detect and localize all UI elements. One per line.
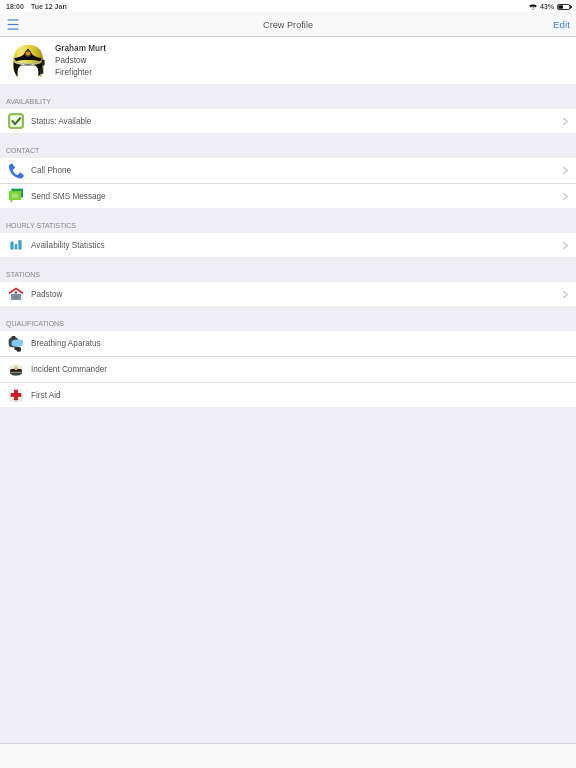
staticText: Status: Available (31, 117, 92, 126)
staticText: Send SMS Message (31, 192, 106, 201)
staticText: 18:00 (6, 3, 24, 11)
button[interactable]: Graham Murt (0, 37, 576, 84)
staticText: Incident Commander (31, 365, 107, 374)
staticText: Graham Murt (55, 44, 106, 53)
staticText: Tue 12 Jan (31, 3, 67, 11)
staticText: CONTACT (6, 147, 40, 155)
staticText: Edit (553, 19, 570, 30)
staticText: Crew Profile (263, 20, 314, 30)
staticText: Padstow (55, 56, 87, 65)
button[interactable]: Breathing Aparatus (0, 331, 576, 357)
button[interactable]: Incident Commander (0, 357, 576, 383)
staticText: Availability Statistics (31, 241, 105, 250)
staticText: Call Phone (31, 166, 72, 175)
staticText: First Aid (31, 391, 61, 400)
button[interactable]: Call Phone (0, 158, 576, 184)
staticText: AVAILABILITY (6, 98, 51, 106)
staticText: Padstow (31, 290, 63, 299)
staticText: Breathing Aparatus (31, 339, 101, 348)
button[interactable]: Send SMS Message (0, 184, 576, 208)
button[interactable]: Padstow (0, 282, 576, 306)
button[interactable]: Menu (0, 13, 26, 37)
staticText: QUALIFICATIONS (6, 320, 64, 328)
button[interactable]: First Aid (0, 383, 576, 407)
button[interactable]: Availability Statistics (0, 233, 576, 257)
staticText: STATIONS (6, 271, 40, 279)
staticText: Firefighter (55, 68, 92, 77)
button[interactable]: Status: Available (0, 109, 576, 133)
staticText: 43% (540, 3, 555, 11)
staticText: HOURLY STATISTICS (6, 222, 76, 230)
button[interactable]: Edit (545, 19, 576, 30)
